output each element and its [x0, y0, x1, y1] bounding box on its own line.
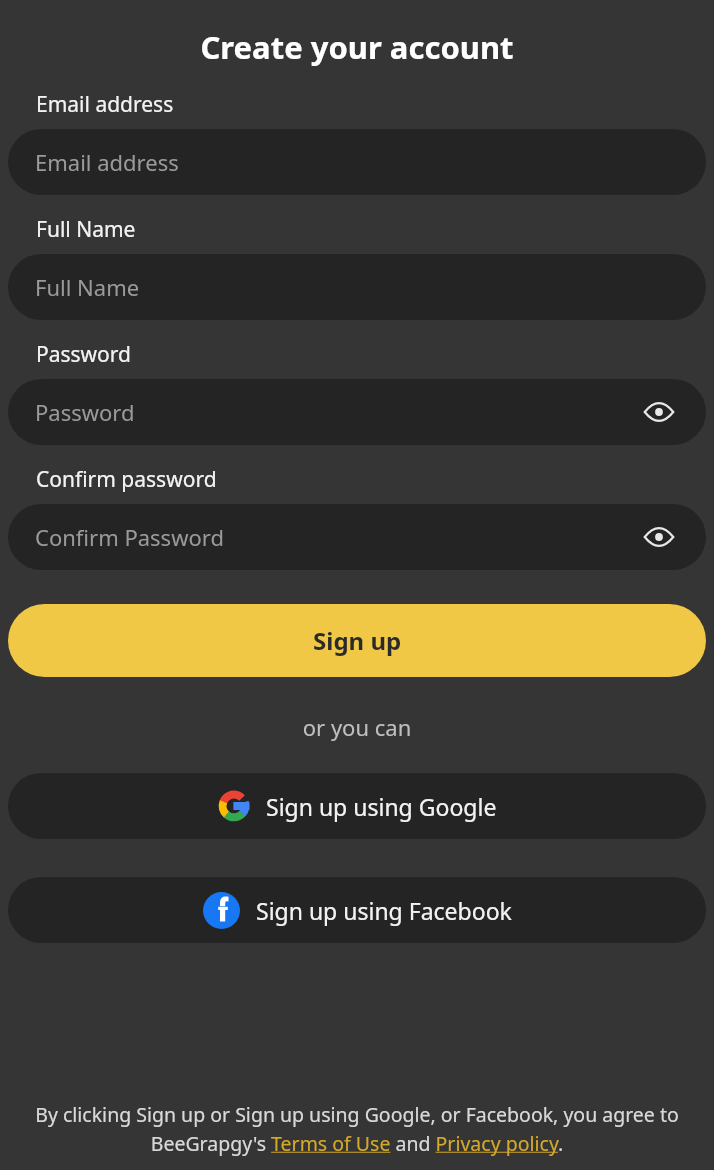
- button[interactable]: Password: [8, 379, 706, 445]
- staticText: or you can: [8, 712, 706, 742]
- staticText: Password: [36, 340, 131, 369]
- staticText: Sign up using Google: [266, 791, 497, 822]
- button[interactable]: Email address: [8, 129, 706, 195]
- button[interactable]: Sign up using Facebook: [8, 877, 706, 943]
- staticText: Email address: [35, 147, 179, 177]
- staticText: Sign up: [313, 624, 402, 657]
- staticText: Create your account: [8, 26, 706, 68]
- staticText: Confirm Password: [35, 522, 224, 552]
- button[interactable]: Full Name: [8, 254, 706, 320]
- button[interactable]: Confirm Password: [8, 504, 706, 570]
- button[interactable]: Sign up: [8, 604, 706, 677]
- staticText: Full Name: [35, 272, 140, 302]
- staticText: Sign up using Facebook: [256, 895, 512, 926]
- button[interactable]: Sign up using Google: [8, 773, 706, 839]
- staticText: Email address: [36, 90, 174, 119]
- staticText: Password: [35, 397, 135, 427]
- staticText: Confirm password: [36, 465, 217, 494]
- staticText: By clicking Sign up or Sign up using Goo…: [10, 1101, 704, 1156]
- staticText: Full Name: [36, 215, 136, 244]
